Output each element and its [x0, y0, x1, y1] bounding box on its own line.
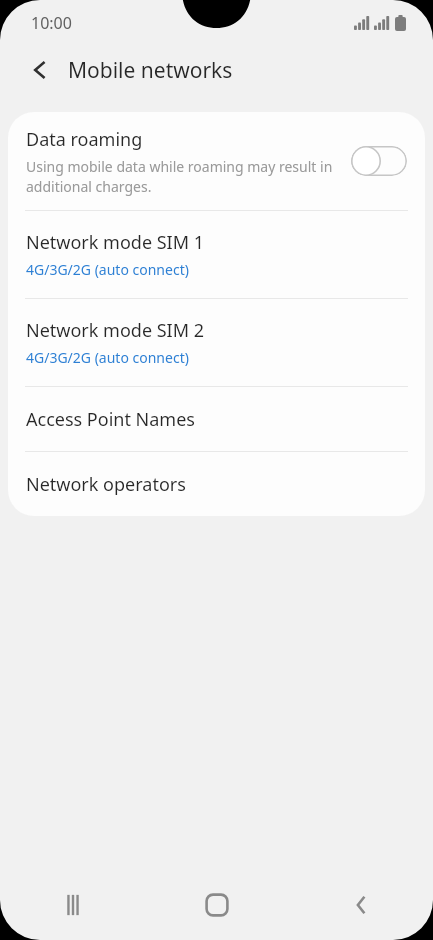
button[interactable]: Data roaming	[8, 112, 425, 210]
button[interactable]: Data roaming toggle, off	[351, 146, 407, 176]
button[interactable]: Back	[14, 46, 66, 94]
staticText: 4G/3G/2G (auto connect)	[26, 348, 189, 367]
staticText: Network mode SIM 1	[26, 230, 205, 255]
staticText: Mobile networks	[68, 56, 233, 85]
staticText: 4G/3G/2G (auto connect)	[26, 260, 189, 279]
staticText: Data roaming	[26, 127, 143, 152]
button[interactable]: Network operators	[8, 452, 425, 516]
button[interactable]: Access Point Names	[8, 387, 425, 451]
staticText: Using mobile data while roaming may resu…	[26, 157, 341, 196]
button[interactable]: Home	[145, 870, 289, 940]
staticText: 10:00	[31, 12, 72, 34]
button[interactable]: Recent apps	[0, 870, 145, 940]
staticText: Access Point Names	[26, 407, 195, 432]
staticText: Network operators	[26, 472, 186, 497]
staticText: Network mode SIM 2	[26, 318, 205, 343]
button[interactable]: Network mode SIM 2	[8, 299, 425, 386]
button[interactable]: Back	[289, 870, 433, 940]
button[interactable]: Network mode SIM 1	[8, 211, 425, 298]
